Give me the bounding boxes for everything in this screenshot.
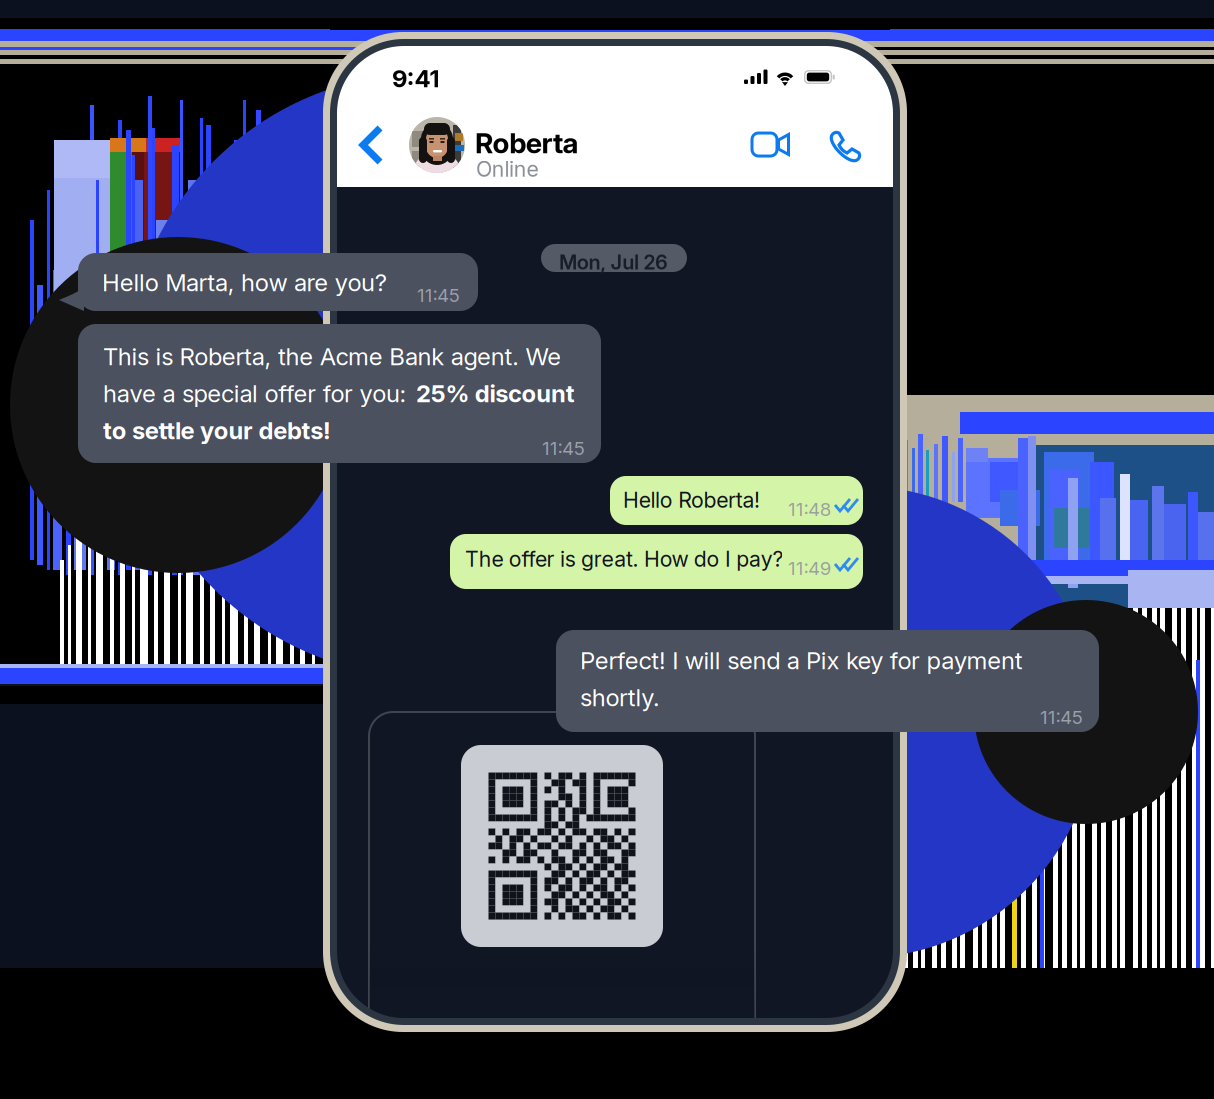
staticText: Mon, Jul 26 bbox=[559, 250, 668, 274]
staticText: 9:41 bbox=[392, 64, 439, 93]
staticText: Hello Marta, how are you? bbox=[102, 268, 387, 297]
staticText: 25% discount bbox=[416, 379, 575, 408]
staticText: 11:45 bbox=[1040, 706, 1083, 729]
staticText: The offer is great. How do I pay? bbox=[465, 546, 783, 572]
staticText: This is Roberta, the Acme Bank agent. We bbox=[103, 342, 561, 371]
staticText: Online bbox=[476, 156, 538, 182]
staticText: Hello Roberta! bbox=[623, 487, 760, 513]
staticText: shortly. bbox=[580, 683, 660, 712]
staticText: Perfect! I will send a Pix key for payme… bbox=[580, 646, 1023, 675]
button[interactable]: Voice call bbox=[817, 120, 867, 170]
staticText: 11:49 bbox=[788, 557, 832, 580]
button[interactable]: Back bbox=[352, 114, 398, 176]
staticText: 11:45 bbox=[417, 284, 460, 307]
staticText: Roberta bbox=[475, 126, 579, 160]
staticText: 11:45 bbox=[542, 437, 585, 460]
staticText: to settle your debts! bbox=[103, 416, 331, 445]
staticText: have a special offer for you: bbox=[103, 379, 413, 408]
staticText: 11:48 bbox=[788, 498, 832, 521]
button[interactable]: Video call bbox=[746, 120, 796, 170]
